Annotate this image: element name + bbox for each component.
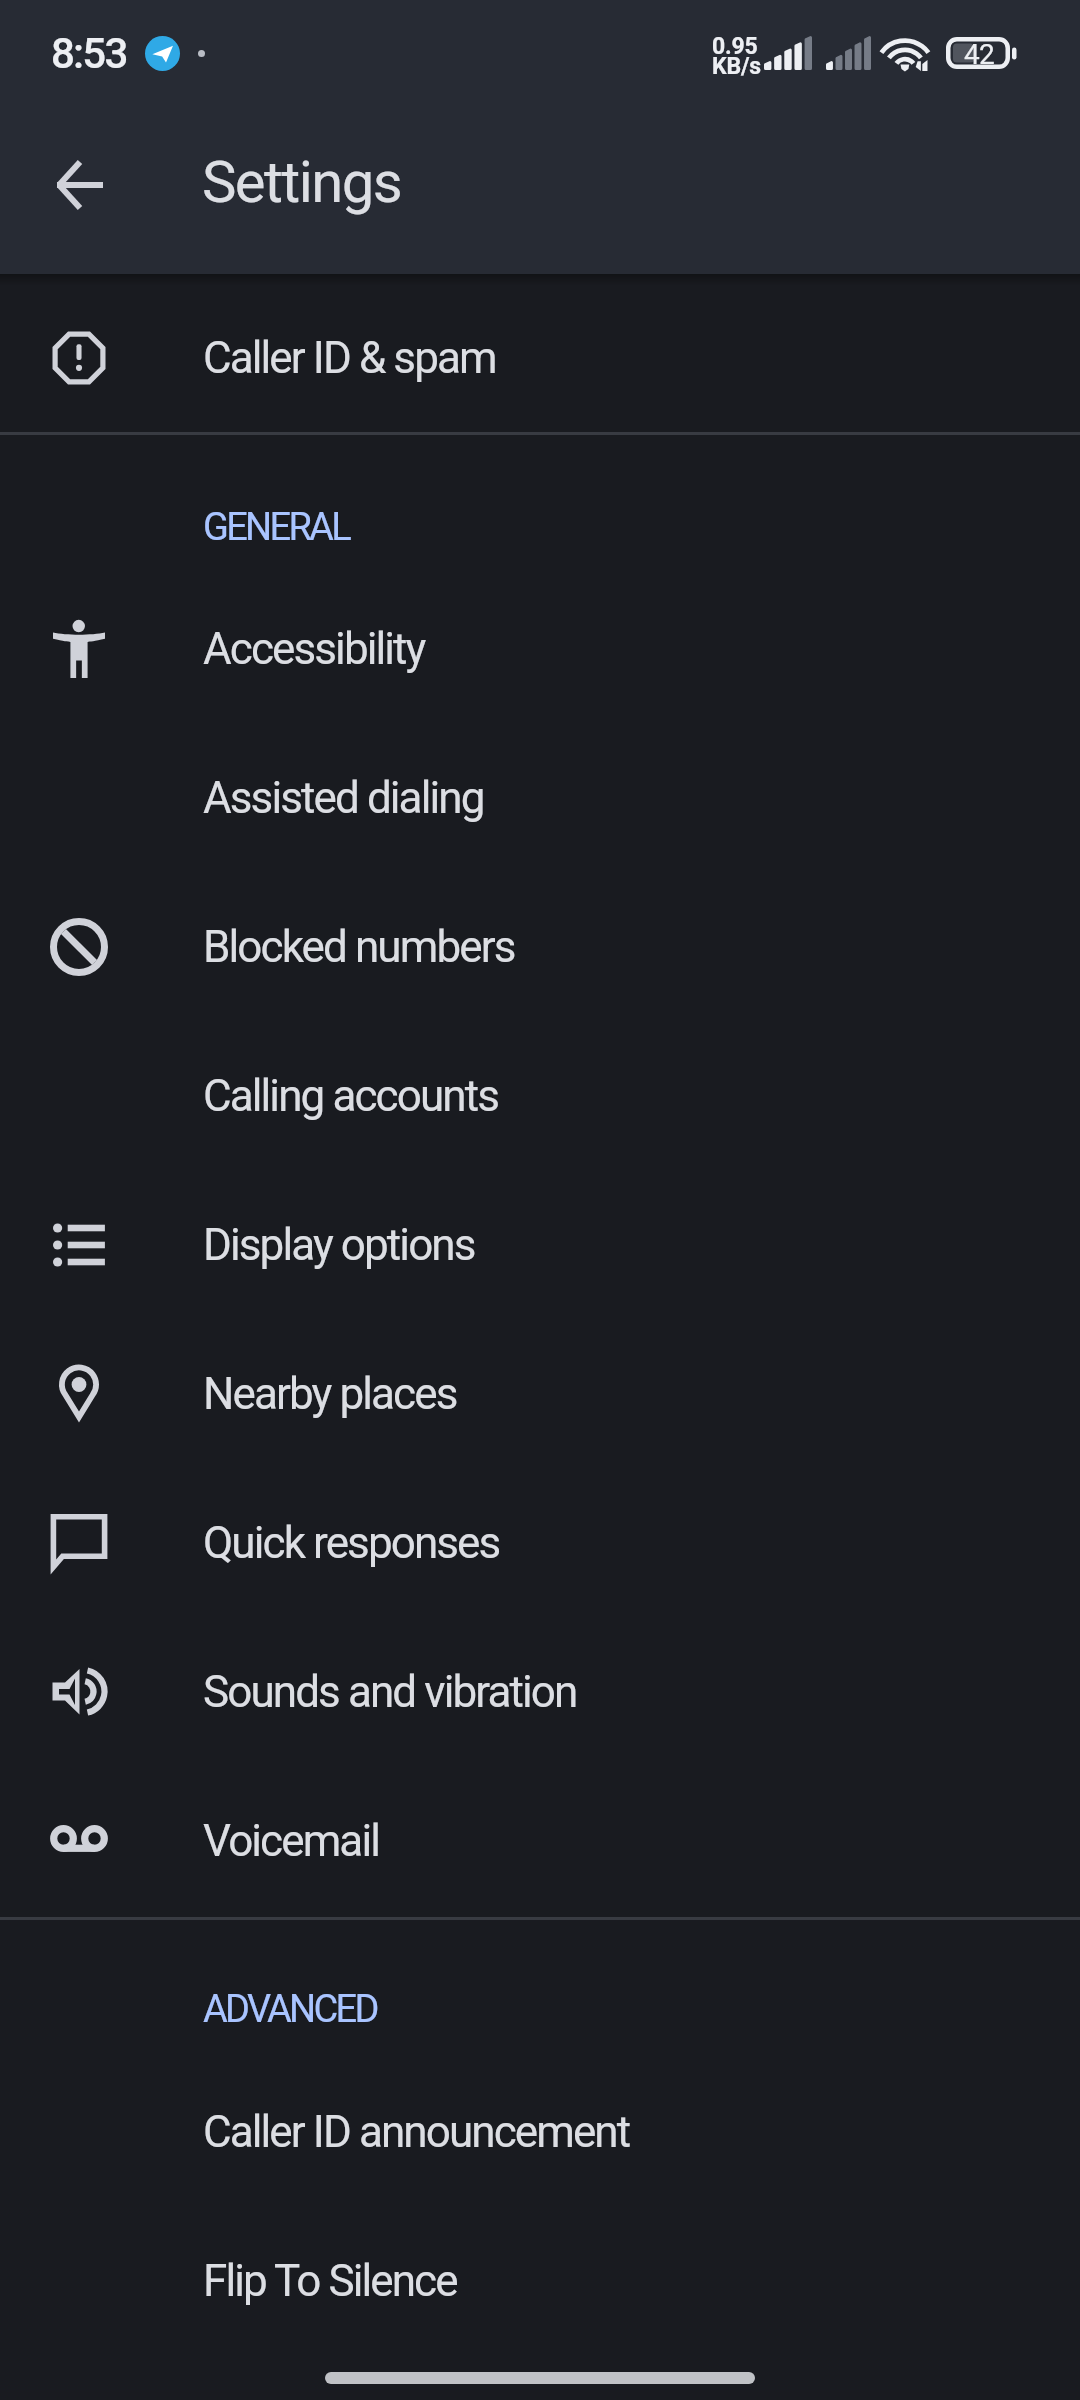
staticText: Caller ID announcement <box>203 2106 630 2158</box>
button[interactable]: Blocked numbers <box>0 873 1080 1021</box>
staticText: KB/s <box>712 53 761 80</box>
staticText: Display options <box>203 1219 475 1271</box>
button[interactable]: Assisted dialing <box>0 724 1080 872</box>
staticText: Voicemail <box>203 1815 380 1867</box>
staticText: 0.95 <box>712 33 758 60</box>
staticText: Sounds and vibration <box>203 1666 577 1718</box>
staticText: Flip To Silence <box>203 2255 457 2307</box>
staticText: Settings <box>202 148 401 216</box>
staticText: Nearby places <box>203 1368 457 1420</box>
button[interactable]: Quick responses <box>0 1469 1080 1617</box>
button[interactable]: Back <box>32 137 128 233</box>
staticText: 42 <box>964 38 994 70</box>
staticText: 8:53 <box>51 29 127 78</box>
staticText: Caller ID & spam <box>203 332 496 384</box>
button[interactable]: Caller ID announcement <box>0 2058 1080 2206</box>
button[interactable]: Calling accounts <box>0 1022 1080 1170</box>
staticText: Quick responses <box>203 1517 500 1569</box>
button[interactable]: Flip To Silence <box>0 2207 1080 2355</box>
button[interactable]: Accessibility <box>0 575 1080 723</box>
staticText: Accessibility <box>203 623 425 675</box>
staticText: Blocked numbers <box>203 921 515 973</box>
staticText: Calling accounts <box>203 1070 498 1122</box>
staticText: ADVANCED <box>203 1987 377 2032</box>
button[interactable]: Sounds and vibration <box>0 1618 1080 1766</box>
button[interactable]: Voicemail <box>0 1767 1080 1915</box>
button[interactable]: Display options <box>0 1171 1080 1319</box>
staticText: GENERAL <box>203 505 349 550</box>
button[interactable]: Caller ID & spam <box>0 284 1080 432</box>
button[interactable]: Nearby places <box>0 1320 1080 1468</box>
staticText: Assisted dialing <box>203 772 484 824</box>
